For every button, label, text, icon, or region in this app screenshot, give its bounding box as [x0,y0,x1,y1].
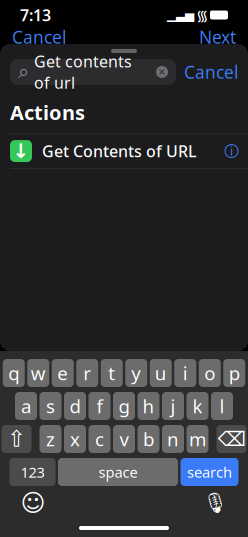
button[interactable]: Cancel [184,60,238,83]
staticText: s [46,394,55,418]
staticText: i [230,143,233,159]
button[interactable]: c [88,425,110,453]
staticText: r [83,361,91,385]
staticText: i [183,361,188,385]
button[interactable]: q [3,359,25,387]
staticText: m [189,427,206,451]
staticText: n [167,427,179,451]
button[interactable]: v [113,425,135,453]
staticText: d [69,394,80,418]
button[interactable]: y [125,359,147,387]
staticText: f [96,394,102,418]
staticText: j [170,394,175,418]
staticText: ⌕ [18,62,29,82]
button[interactable]: ↓ [0,134,248,168]
staticText: p [229,361,240,385]
button[interactable]: n [162,425,184,453]
button[interactable]: l [211,392,233,420]
staticText: l [219,394,224,418]
staticText: w [31,361,46,385]
button[interactable]: search [180,458,238,486]
staticText: g [118,394,129,418]
button[interactable]: f [88,392,110,420]
staticText: search [187,462,232,482]
button[interactable]: z [39,425,61,453]
staticText: v [119,427,128,451]
button[interactable]: k [186,392,208,420]
button[interactable]: t [101,359,123,387]
staticText: b [143,427,154,451]
button[interactable]: b [137,425,159,453]
button[interactable]: Shift [1,425,31,453]
button[interactable]: o [199,359,221,387]
staticText: z [46,427,55,451]
staticText: k [192,394,202,418]
staticText: Actions [10,99,85,126]
staticText: 7:13 [20,4,51,26]
button[interactable]: m [186,425,208,453]
staticText: Get Contents of URL [42,140,197,162]
button[interactable]: Delete [216,425,246,453]
button[interactable]: x [64,425,86,453]
staticText: x [70,427,80,451]
staticText: Cancel [12,25,66,48]
button[interactable]: d [64,392,86,420]
staticText: Next [199,25,236,48]
staticText: Cancel [184,60,238,83]
staticText: 🎙 [202,492,227,514]
button[interactable]: 123 [9,458,55,486]
button[interactable]: j [162,392,184,420]
button[interactable]: s [39,392,61,420]
staticText: a [21,394,31,418]
staticText: t [108,361,115,385]
staticText: ✕ [158,67,166,77]
staticText: ↓ [12,140,29,162]
button[interactable]: a [15,392,37,420]
staticText: ⇧ [7,426,26,452]
button[interactable]: h [137,392,159,420]
button[interactable]: g [113,392,135,420]
staticText: ☺ [20,489,45,517]
button[interactable]: p [223,359,245,387]
button[interactable]: Emoji [20,490,46,516]
staticText: c [95,427,104,451]
button[interactable]: u [150,359,172,387]
staticText: ⌫ [217,428,245,450]
staticText: q [8,361,19,385]
button[interactable]: r [76,359,98,387]
button[interactable]: Dictation [202,490,228,516]
staticText: u [155,361,167,385]
staticText: e [57,361,68,385]
staticText: Get contents of url [34,51,132,93]
staticText: o [204,361,215,385]
button[interactable]: i [174,359,196,387]
staticText: ᯾ [196,5,208,25]
staticText: 123 [20,462,44,482]
staticText: ▁▃▅ [167,8,194,22]
button[interactable]: e [52,359,74,387]
button[interactable]: ⌕ [10,59,176,85]
button[interactable]: space [58,458,178,486]
staticText: y [131,361,141,385]
staticText: space [98,462,137,482]
staticText: h [142,394,154,418]
button[interactable]: w [27,359,49,387]
